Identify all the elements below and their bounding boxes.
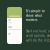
staticText: matters bbox=[26, 18, 37, 22]
staticText: send a photo, and bbox=[26, 34, 50, 37]
staticText: It's simple to bbox=[26, 9, 45, 13]
staticText: Say it out loud, or bbox=[26, 29, 50, 33]
staticText: share what bbox=[26, 14, 42, 17]
staticText: we'll do the rest. bbox=[26, 39, 50, 42]
